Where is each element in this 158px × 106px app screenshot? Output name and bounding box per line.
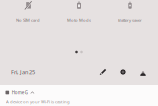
button[interactable]: Edit (94, 64, 112, 80)
button[interactable]: Moto Mods (54, 0, 104, 24)
staticText: No SIM card (16, 17, 40, 23)
button[interactable]: Battery saver (105, 0, 155, 24)
button[interactable]: Account (134, 65, 152, 81)
staticText: Home G (12, 89, 28, 95)
button[interactable]: No SIM card (3, 0, 53, 24)
staticText: Fri, Jan 25 (11, 68, 35, 76)
staticText: Moto Mods (67, 17, 91, 23)
button[interactable]: Home G (0, 85, 158, 106)
staticText: A device on your Wi-Fi is casting (6, 99, 70, 104)
button[interactable]: Settings (114, 64, 132, 80)
staticText: Battery saver (118, 17, 142, 23)
